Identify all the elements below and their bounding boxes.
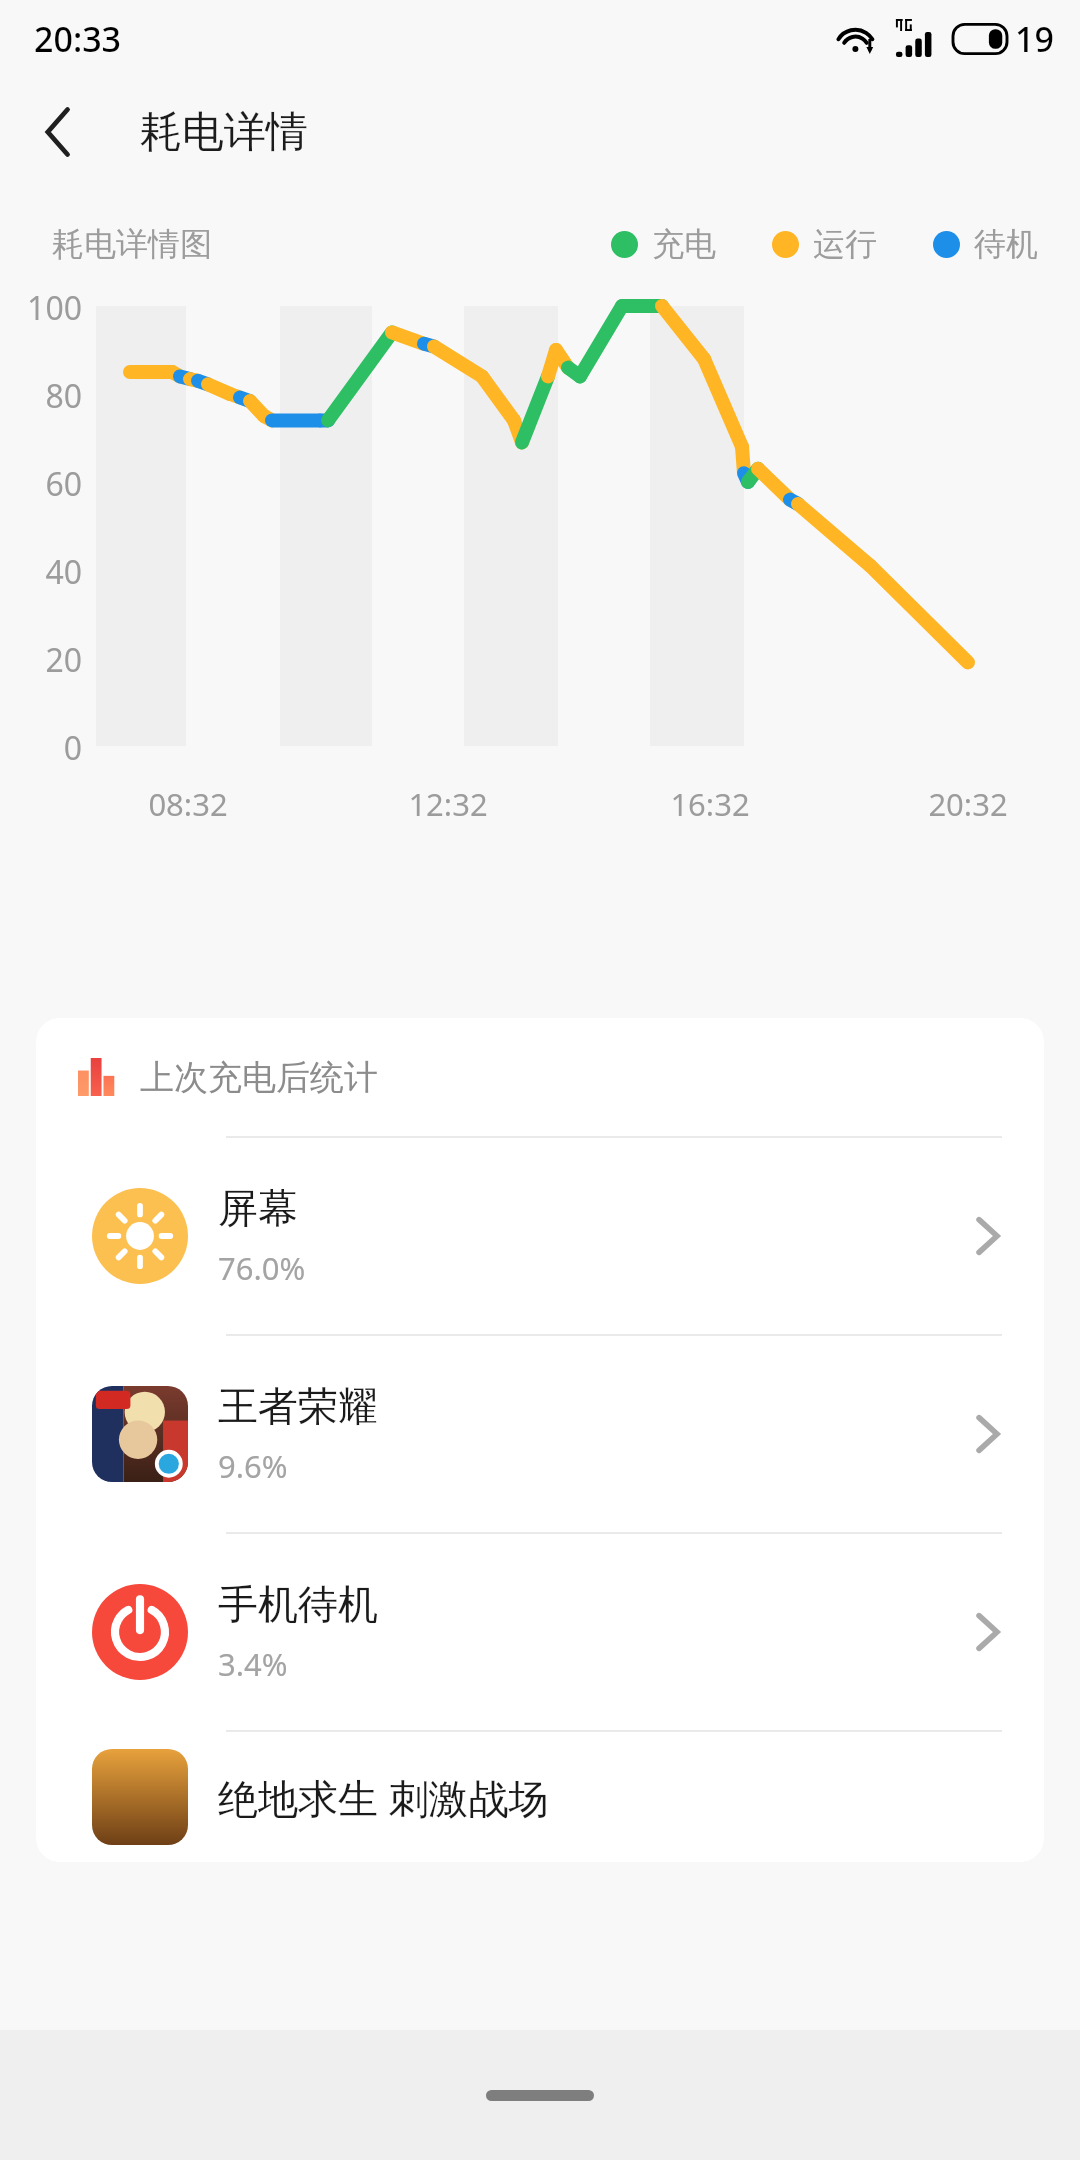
staticText: 充电 xyxy=(652,224,716,264)
button[interactable]: 屏幕 xyxy=(36,1138,1044,1334)
staticText: 08:32 xyxy=(118,783,258,825)
staticText: 60 xyxy=(0,462,82,506)
staticText: 20 xyxy=(0,638,82,682)
staticText: 16:32 xyxy=(640,783,780,825)
button[interactable]: 绝地求生 刺激战场 xyxy=(36,1732,1044,1862)
staticText: 手机待机 xyxy=(218,1579,378,1629)
staticText: 王者荣耀 xyxy=(218,1381,378,1431)
staticText: 20:33 xyxy=(34,16,122,62)
staticText: 0 xyxy=(0,726,82,770)
staticText: 19 xyxy=(1015,16,1054,62)
staticText: 绝地求生 刺激战场 xyxy=(218,1770,549,1825)
staticText: 待机 xyxy=(974,224,1038,264)
staticText: 3.4% xyxy=(218,1643,288,1685)
staticText: 上次充电后统计 xyxy=(140,1056,378,1099)
staticText: 40 xyxy=(0,550,82,594)
staticText: 20:32 xyxy=(898,783,1038,825)
staticText: 12:32 xyxy=(378,783,518,825)
staticText: 80 xyxy=(0,374,82,418)
staticText: 76.0% xyxy=(218,1247,306,1289)
staticText: 屏幕 xyxy=(218,1183,298,1233)
button[interactable]: 王者荣耀 xyxy=(36,1336,1044,1532)
button[interactable]: 手机待机 xyxy=(36,1534,1044,1730)
button[interactable]: Back xyxy=(16,90,100,174)
staticText: 9.6% xyxy=(218,1445,288,1487)
staticText: 100 xyxy=(0,286,82,330)
staticText: 耗电详情 xyxy=(140,106,308,159)
staticText: 耗电详情图 xyxy=(52,224,212,264)
staticText: 运行 xyxy=(813,224,877,264)
